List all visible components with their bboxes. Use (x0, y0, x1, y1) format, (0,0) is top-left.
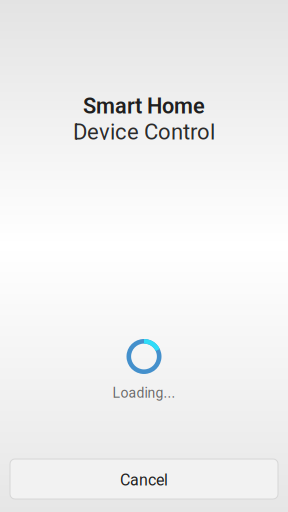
staticText: Device Control (73, 119, 215, 145)
staticText: Loading... (112, 385, 175, 401)
staticText: Smart Home (83, 93, 205, 119)
staticText: Cancel (120, 471, 168, 489)
button[interactable]: Cancel (10, 459, 278, 499)
